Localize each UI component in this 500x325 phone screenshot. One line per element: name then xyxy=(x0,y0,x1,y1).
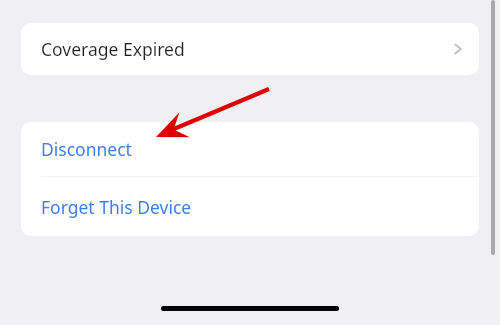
button[interactable]: Coverage Expired xyxy=(21,23,479,75)
staticText: Coverage Expired xyxy=(41,37,185,61)
button[interactable]: Disconnect xyxy=(21,122,479,176)
staticText: Forget This Device xyxy=(41,195,192,219)
staticText: Disconnect xyxy=(41,137,132,161)
other: Home indicator xyxy=(161,306,339,311)
button[interactable]: Forget This Device xyxy=(21,177,479,236)
